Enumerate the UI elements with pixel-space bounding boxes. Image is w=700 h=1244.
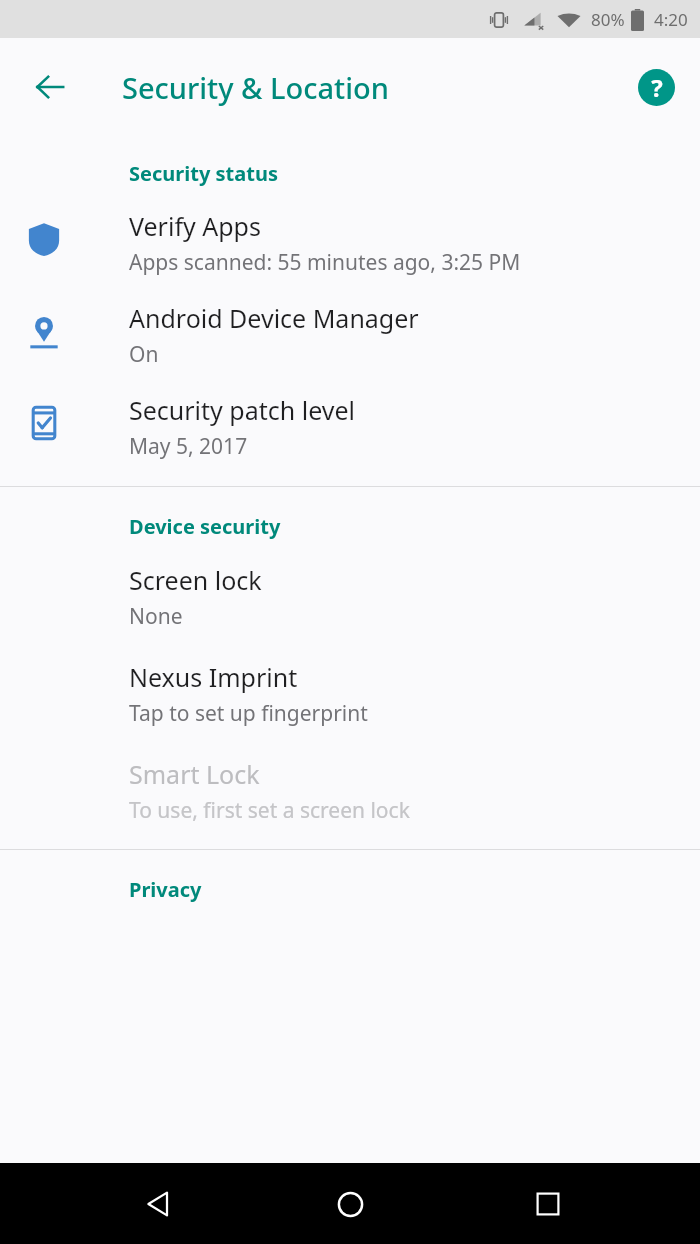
button[interactable]: Security patch level: [0, 393, 700, 461]
staticText: Nexus Imprint: [129, 660, 298, 694]
staticText: Apps scanned: 55 minutes ago, 3:25 PM: [129, 248, 521, 277]
staticText: None: [129, 602, 183, 631]
staticText: On: [129, 340, 159, 369]
button[interactable]: Back: [22, 59, 78, 115]
staticText: May 5, 2017: [129, 432, 248, 461]
staticText: Privacy: [129, 876, 202, 903]
staticText: Security & Location: [122, 68, 389, 107]
staticText: 80%: [591, 8, 625, 31]
button[interactable]: Screen lock: [0, 563, 700, 631]
staticText: Tap to set up fingerprint: [129, 699, 368, 728]
staticText: ?: [651, 71, 663, 104]
staticText: Screen lock: [129, 563, 262, 597]
button[interactable]: Recent apps: [518, 1174, 578, 1234]
button[interactable]: Verify Apps: [0, 209, 700, 277]
staticText: To use, first set a screen lock: [129, 796, 410, 825]
staticText: Android Device Manager: [129, 301, 419, 335]
button[interactable]: Home: [320, 1174, 380, 1234]
staticText: Verify Apps: [129, 209, 261, 243]
button[interactable]: Android Device Manager: [0, 301, 700, 369]
button[interactable]: Back: [128, 1174, 188, 1234]
staticText: Security patch level: [129, 393, 356, 427]
button[interactable]: Nexus Imprint: [0, 660, 700, 728]
staticText: 4:20: [654, 8, 688, 31]
button[interactable]: Help: [630, 61, 682, 113]
button[interactable]: Smart Lock: [0, 757, 700, 825]
staticText: Device security: [129, 513, 281, 540]
staticText: Smart Lock: [129, 757, 260, 791]
staticText: Security status: [129, 160, 278, 187]
